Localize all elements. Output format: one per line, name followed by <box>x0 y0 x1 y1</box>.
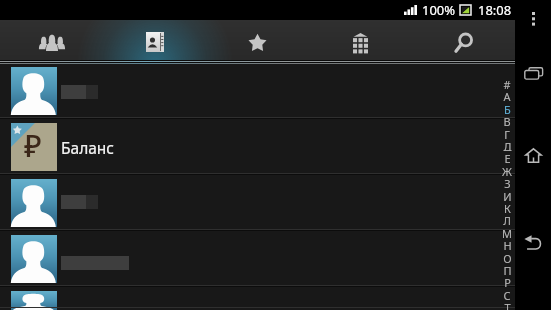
staticText: Н <box>503 238 512 250</box>
staticText: Г <box>504 127 510 139</box>
staticText: З <box>504 176 511 188</box>
staticText: 100% <box>422 1 456 19</box>
staticText: Б <box>504 102 511 114</box>
button[interactable] <box>0 230 515 286</box>
button[interactable]: Favorites <box>206 20 309 60</box>
button[interactable]: Dialpad <box>309 20 412 60</box>
button[interactable]: People <box>0 20 103 60</box>
staticText: # <box>503 77 511 89</box>
staticText: Д <box>503 139 512 151</box>
button[interactable] <box>0 174 515 230</box>
staticText: Ж <box>502 164 512 176</box>
button[interactable]: More options <box>515 6 551 30</box>
staticText: И <box>503 189 512 201</box>
button[interactable] <box>0 286 515 308</box>
button[interactable]: Contacts <box>103 20 206 60</box>
staticText: Е <box>504 151 511 163</box>
button[interactable]: Recent apps <box>515 58 551 88</box>
staticText: М <box>502 226 512 238</box>
staticText: В <box>503 114 511 126</box>
staticText: ₽ <box>24 125 42 166</box>
staticText: Р <box>504 275 511 287</box>
staticText: К <box>504 201 511 213</box>
staticText: П <box>503 263 512 275</box>
button[interactable]: Back <box>515 227 551 257</box>
staticText: Баланс <box>61 137 115 158</box>
staticText: 18:08 <box>478 1 512 19</box>
staticText: О <box>503 251 512 263</box>
staticText: А <box>503 89 511 101</box>
staticText: Т <box>504 300 511 310</box>
button[interactable]: Home <box>515 140 551 170</box>
staticText: Л <box>503 213 511 225</box>
button[interactable]: Alphabet index <box>499 64 515 310</box>
button[interactable]: ₽ <box>0 118 515 174</box>
button[interactable] <box>0 62 515 118</box>
staticText: С <box>503 288 511 300</box>
button[interactable]: Search <box>412 20 515 60</box>
